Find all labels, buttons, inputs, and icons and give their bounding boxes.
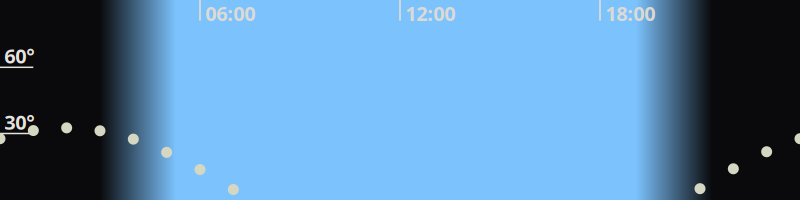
staticText: 18:00 — [605, 0, 655, 26]
staticText: 06:00 — [205, 0, 255, 26]
staticText: 12:00 — [405, 0, 455, 26]
staticText: 30° — [4, 109, 34, 135]
staticText: 60° — [4, 42, 34, 69]
